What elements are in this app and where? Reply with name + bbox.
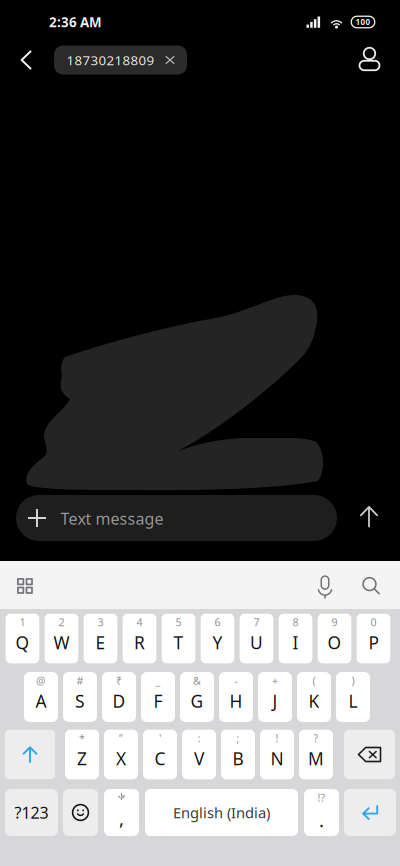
button[interactable]: ( (297, 672, 331, 722)
button[interactable]: 4 (122, 613, 156, 663)
button[interactable]: Shift (4, 729, 55, 779)
staticText: ! (275, 731, 278, 745)
staticText: W (53, 631, 69, 654)
staticText: Z (77, 747, 87, 770)
staticText: 18730218809 (66, 51, 154, 69)
button[interactable]: 5 (161, 613, 195, 663)
staticText: J (272, 689, 277, 712)
staticText: 9 (331, 615, 337, 629)
staticText: 2:36 AM (49, 13, 102, 31)
staticText: L (348, 689, 357, 712)
staticText: ; (236, 731, 239, 745)
staticText: X (116, 747, 126, 770)
staticText: _ (155, 673, 160, 688)
button[interactable]: * (65, 729, 99, 779)
button[interactable]: ) (336, 672, 370, 722)
button[interactable]: Backspace (344, 729, 395, 779)
staticText: M (308, 747, 324, 770)
staticText: Q (15, 631, 29, 654)
staticText: P (368, 631, 378, 654)
staticText: ( (312, 673, 315, 688)
button[interactable]: + (258, 672, 292, 722)
button[interactable]: # (63, 672, 97, 722)
staticText: G (190, 689, 203, 712)
staticText: ₹ (116, 673, 122, 688)
staticText: F (153, 689, 162, 712)
button[interactable]: Emoji (63, 789, 98, 836)
staticText: ) (351, 673, 354, 688)
staticText: 6 (214, 615, 220, 629)
button[interactable]: ?123 (5, 789, 58, 836)
staticText: + (272, 673, 278, 688)
button[interactable]: - (219, 672, 253, 722)
staticText: 5 (175, 615, 181, 629)
button[interactable]: ? (299, 729, 333, 779)
button[interactable]: 3 (83, 613, 117, 663)
staticText: @ (36, 673, 46, 688)
staticText: ? (313, 731, 318, 745)
button[interactable]: , (104, 789, 139, 836)
staticText: ” (119, 731, 123, 745)
staticText: E (95, 631, 105, 654)
button[interactable]: Text message (16, 495, 337, 541)
staticText: Text message (60, 508, 163, 529)
button[interactable]: ₹ (102, 672, 136, 722)
button[interactable]: Contact details (347, 38, 391, 82)
button[interactable]: English (India) (145, 789, 298, 836)
button[interactable]: ; (221, 729, 255, 779)
staticText: K (308, 689, 319, 712)
staticText: A (35, 689, 46, 712)
button[interactable]: Voice input (303, 564, 347, 608)
button[interactable]: 8 (278, 613, 312, 663)
button[interactable]: ” (104, 729, 138, 779)
staticText: - (234, 673, 237, 688)
staticText: 4 (136, 615, 142, 629)
staticText: ' (159, 731, 161, 745)
button[interactable]: 9 (317, 613, 351, 663)
staticText: R (134, 631, 145, 654)
staticText: T (173, 631, 183, 654)
staticText: V (194, 747, 204, 770)
staticText: # (76, 673, 83, 688)
staticText: Y (212, 631, 222, 654)
button[interactable]: 18730218809 (54, 45, 187, 74)
button[interactable]: ! (260, 729, 294, 779)
staticText: * (79, 731, 85, 745)
button[interactable]: 1 (5, 613, 39, 663)
button[interactable]: 0 (356, 613, 390, 663)
staticText: S (75, 689, 85, 712)
button[interactable]: _ (141, 672, 175, 722)
staticText: : (197, 731, 200, 745)
staticText: , (119, 806, 124, 831)
staticText: I (292, 631, 298, 654)
staticText: 2 (58, 615, 64, 629)
button[interactable]: Back (6, 38, 46, 82)
button[interactable]: @ (24, 672, 58, 722)
staticText: H (229, 689, 242, 712)
staticText: D (112, 689, 125, 712)
staticText: !? (317, 790, 325, 805)
staticText: . (319, 808, 324, 832)
staticText: O (327, 631, 341, 654)
staticText: N (270, 747, 283, 770)
button[interactable]: Search (349, 564, 393, 608)
button[interactable]: Toolbox (3, 564, 47, 608)
staticText: 1 (19, 615, 25, 629)
button[interactable]: Send (347, 495, 391, 539)
button[interactable]: : (182, 729, 216, 779)
staticText: 0 (370, 615, 376, 629)
button[interactable]: Return (344, 789, 396, 836)
staticText: & (193, 673, 201, 688)
staticText: C (154, 747, 165, 770)
button[interactable]: 2 (44, 613, 78, 663)
staticText: English (India) (173, 803, 270, 822)
button[interactable]: 6 (200, 613, 234, 663)
staticText: 100 (355, 17, 370, 27)
staticText: 8 (292, 615, 298, 629)
button[interactable]: 7 (239, 613, 273, 663)
staticText: ?123 (14, 802, 48, 823)
button[interactable]: !? (304, 789, 339, 836)
button[interactable]: ' (143, 729, 177, 779)
staticText: 7 (253, 615, 259, 629)
button[interactable]: & (180, 672, 214, 722)
